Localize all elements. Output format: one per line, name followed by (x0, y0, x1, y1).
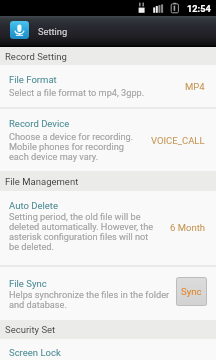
button[interactable]: File Format (0, 65, 216, 107)
staticText: VOICE_CALL (151, 135, 205, 146)
staticText: File Sync (9, 278, 47, 289)
staticText: 12:54 (187, 3, 211, 14)
button[interactable]: Auto Delete (0, 191, 216, 265)
button[interactable]: Record Device (0, 109, 216, 171)
staticText: Record Setting (5, 51, 67, 62)
staticText: Setting (38, 26, 68, 37)
staticText: Choose a device for recording. Mobile ph… (9, 131, 134, 162)
staticText: Sync (181, 286, 202, 297)
staticText: File Management (5, 176, 79, 187)
staticText: 6 Month (170, 222, 205, 233)
button[interactable]: Sync (176, 277, 207, 306)
staticText: Helps synchronize the files in the folde… (9, 289, 170, 310)
staticText: Record Device (9, 118, 70, 129)
staticText: Select a file format to mp4, 3gpp. (9, 87, 145, 98)
staticText: Setting period, the old file will be del… (9, 211, 154, 252)
staticText: MP4 (185, 81, 205, 92)
button[interactable]: Screen Lock (0, 339, 216, 360)
staticText: Auto Delete (9, 200, 58, 211)
button[interactable]: Voice recorder (10, 21, 29, 39)
staticText: Security Set (5, 324, 56, 335)
staticText: File Format (9, 74, 57, 85)
staticText: Screen Lock (9, 347, 61, 358)
